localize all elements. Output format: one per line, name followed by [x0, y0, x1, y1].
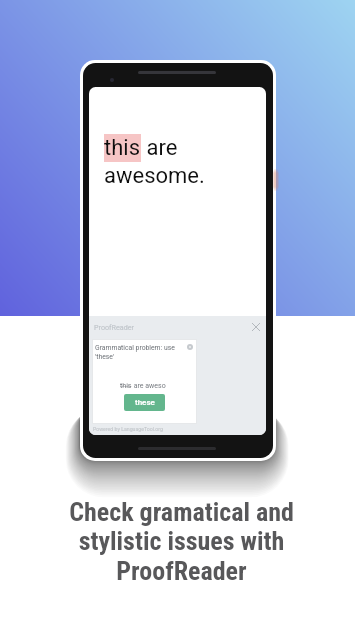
- button[interactable]: Close: [249, 320, 263, 334]
- staticText: are: [141, 135, 178, 161]
- staticText: Powered by LanguageTool.org: [93, 426, 163, 432]
- staticText: this: [104, 135, 141, 161]
- button[interactable]: More info: [187, 344, 193, 350]
- staticText: Check gramatical and stylistic issues wi…: [69, 497, 294, 587]
- staticText: these: [135, 398, 155, 407]
- staticText: awesome.: [104, 163, 205, 189]
- staticText: ProofReader: [94, 323, 135, 331]
- staticText: are aweso: [132, 382, 166, 390]
- staticText: Grammatical problem: use 'these': [95, 344, 187, 360]
- staticText: this: [120, 382, 132, 390]
- button[interactable]: these: [124, 394, 165, 411]
